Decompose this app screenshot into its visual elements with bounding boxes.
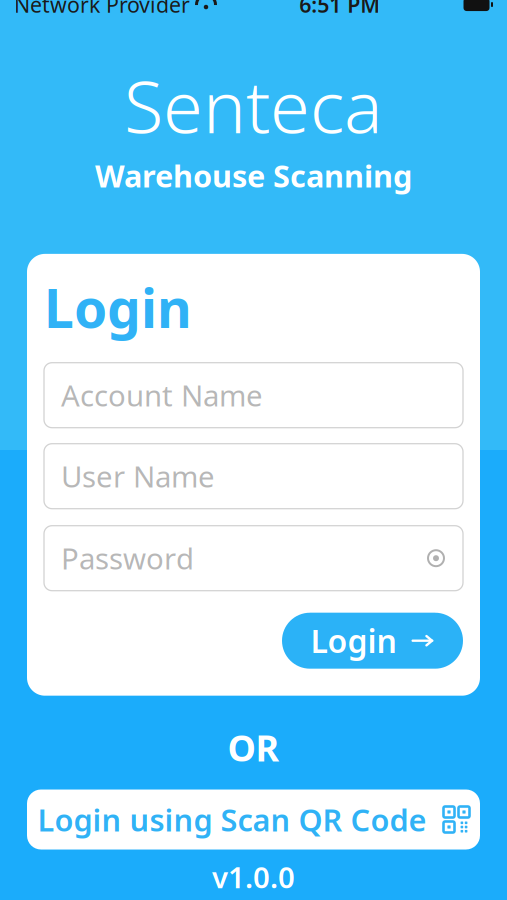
staticText: Network Provider <box>14 0 190 19</box>
staticText: Account Name <box>61 376 263 415</box>
staticText: User Name <box>61 457 215 496</box>
staticText: Login <box>310 619 396 662</box>
staticText: Password <box>61 539 194 578</box>
staticText: Login using Scan QR Code <box>37 799 426 840</box>
button[interactable]: Login using Scan QR Code <box>27 789 480 849</box>
staticText: Login <box>44 272 192 343</box>
staticText: v1.0.0 <box>212 857 295 896</box>
staticText: Senteca <box>124 57 383 153</box>
staticText: Warehouse Scanning <box>95 155 412 196</box>
staticText: 6:51 PM <box>299 0 380 19</box>
staticText: OR <box>227 724 279 771</box>
button[interactable]: Login <box>282 613 463 669</box>
